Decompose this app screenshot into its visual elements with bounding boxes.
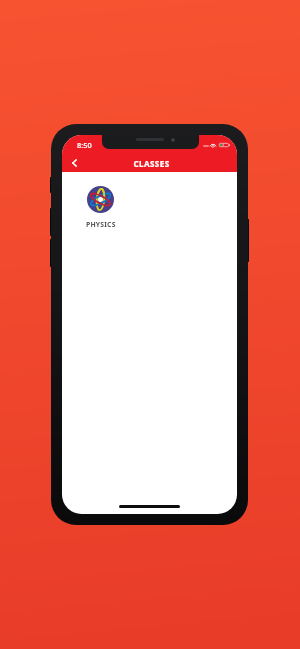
staticText: CLASSES: [133, 158, 170, 169]
staticText: PHYSICS: [86, 220, 116, 229]
button[interactable]: PHYSICS: [77, 179, 125, 225]
staticText: 8:50: [77, 140, 92, 150]
button[interactable]: Back: [64, 153, 84, 173]
